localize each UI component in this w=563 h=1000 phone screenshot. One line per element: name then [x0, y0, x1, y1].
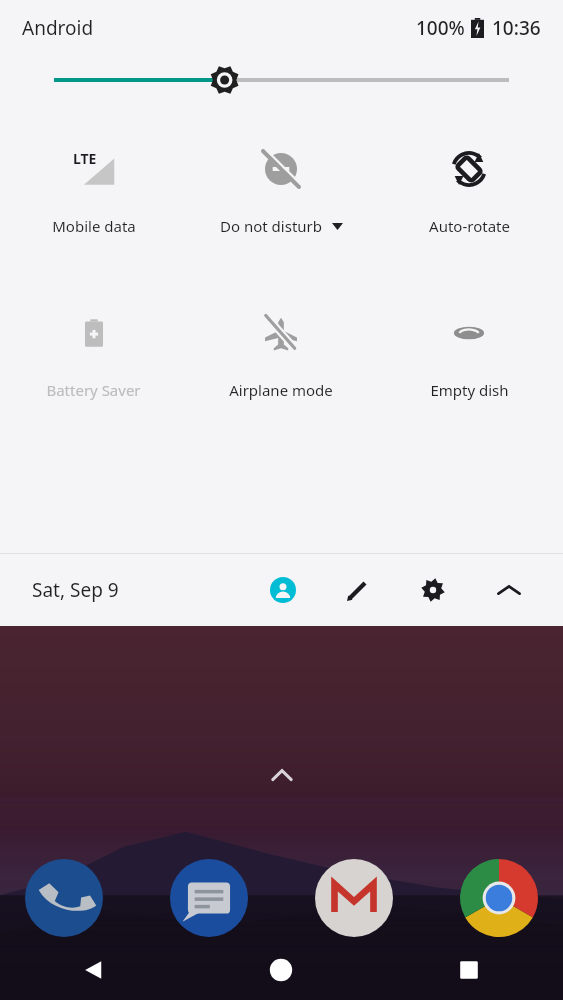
button[interactable]: Auto-rotate	[375, 142, 563, 240]
button[interactable]: Collapse	[485, 566, 533, 614]
staticText: Auto-rotate	[429, 216, 510, 236]
button[interactable]: Settings	[409, 566, 457, 614]
staticText: 10:36	[492, 15, 541, 41]
button[interactable]: User	[259, 566, 307, 614]
staticText: Battery Saver	[46, 380, 141, 400]
staticText: Airplane mode	[229, 380, 333, 400]
button[interactable]: Airplane mode	[187, 306, 375, 404]
button[interactable]: Recent apps	[375, 940, 563, 1000]
button[interactable]: LTE	[0, 142, 187, 240]
button[interactable]: Gmail	[312, 856, 396, 940]
button[interactable]: Phone	[22, 856, 106, 940]
button[interactable]: Do not disturb	[187, 142, 375, 240]
button[interactable]: Edit	[333, 566, 381, 614]
button[interactable]: Empty dish	[375, 306, 563, 404]
button[interactable]: Open app drawer	[260, 754, 304, 798]
staticText: Sat, Sep 9	[32, 577, 119, 603]
staticText: Empty dish	[430, 380, 509, 400]
staticText: 100%	[416, 15, 465, 41]
staticText: Do not disturb	[220, 216, 322, 236]
button[interactable]: Back	[0, 940, 187, 1000]
button[interactable]: Home	[187, 940, 375, 1000]
staticText: LTE	[73, 149, 97, 168]
staticText: Mobile data	[52, 216, 136, 236]
staticText: Android	[22, 15, 94, 41]
button[interactable]: Messages	[167, 856, 251, 940]
button[interactable]: Battery Saver	[0, 306, 187, 404]
button[interactable]: Brightness	[54, 56, 509, 104]
button[interactable]: Chrome	[457, 856, 541, 940]
